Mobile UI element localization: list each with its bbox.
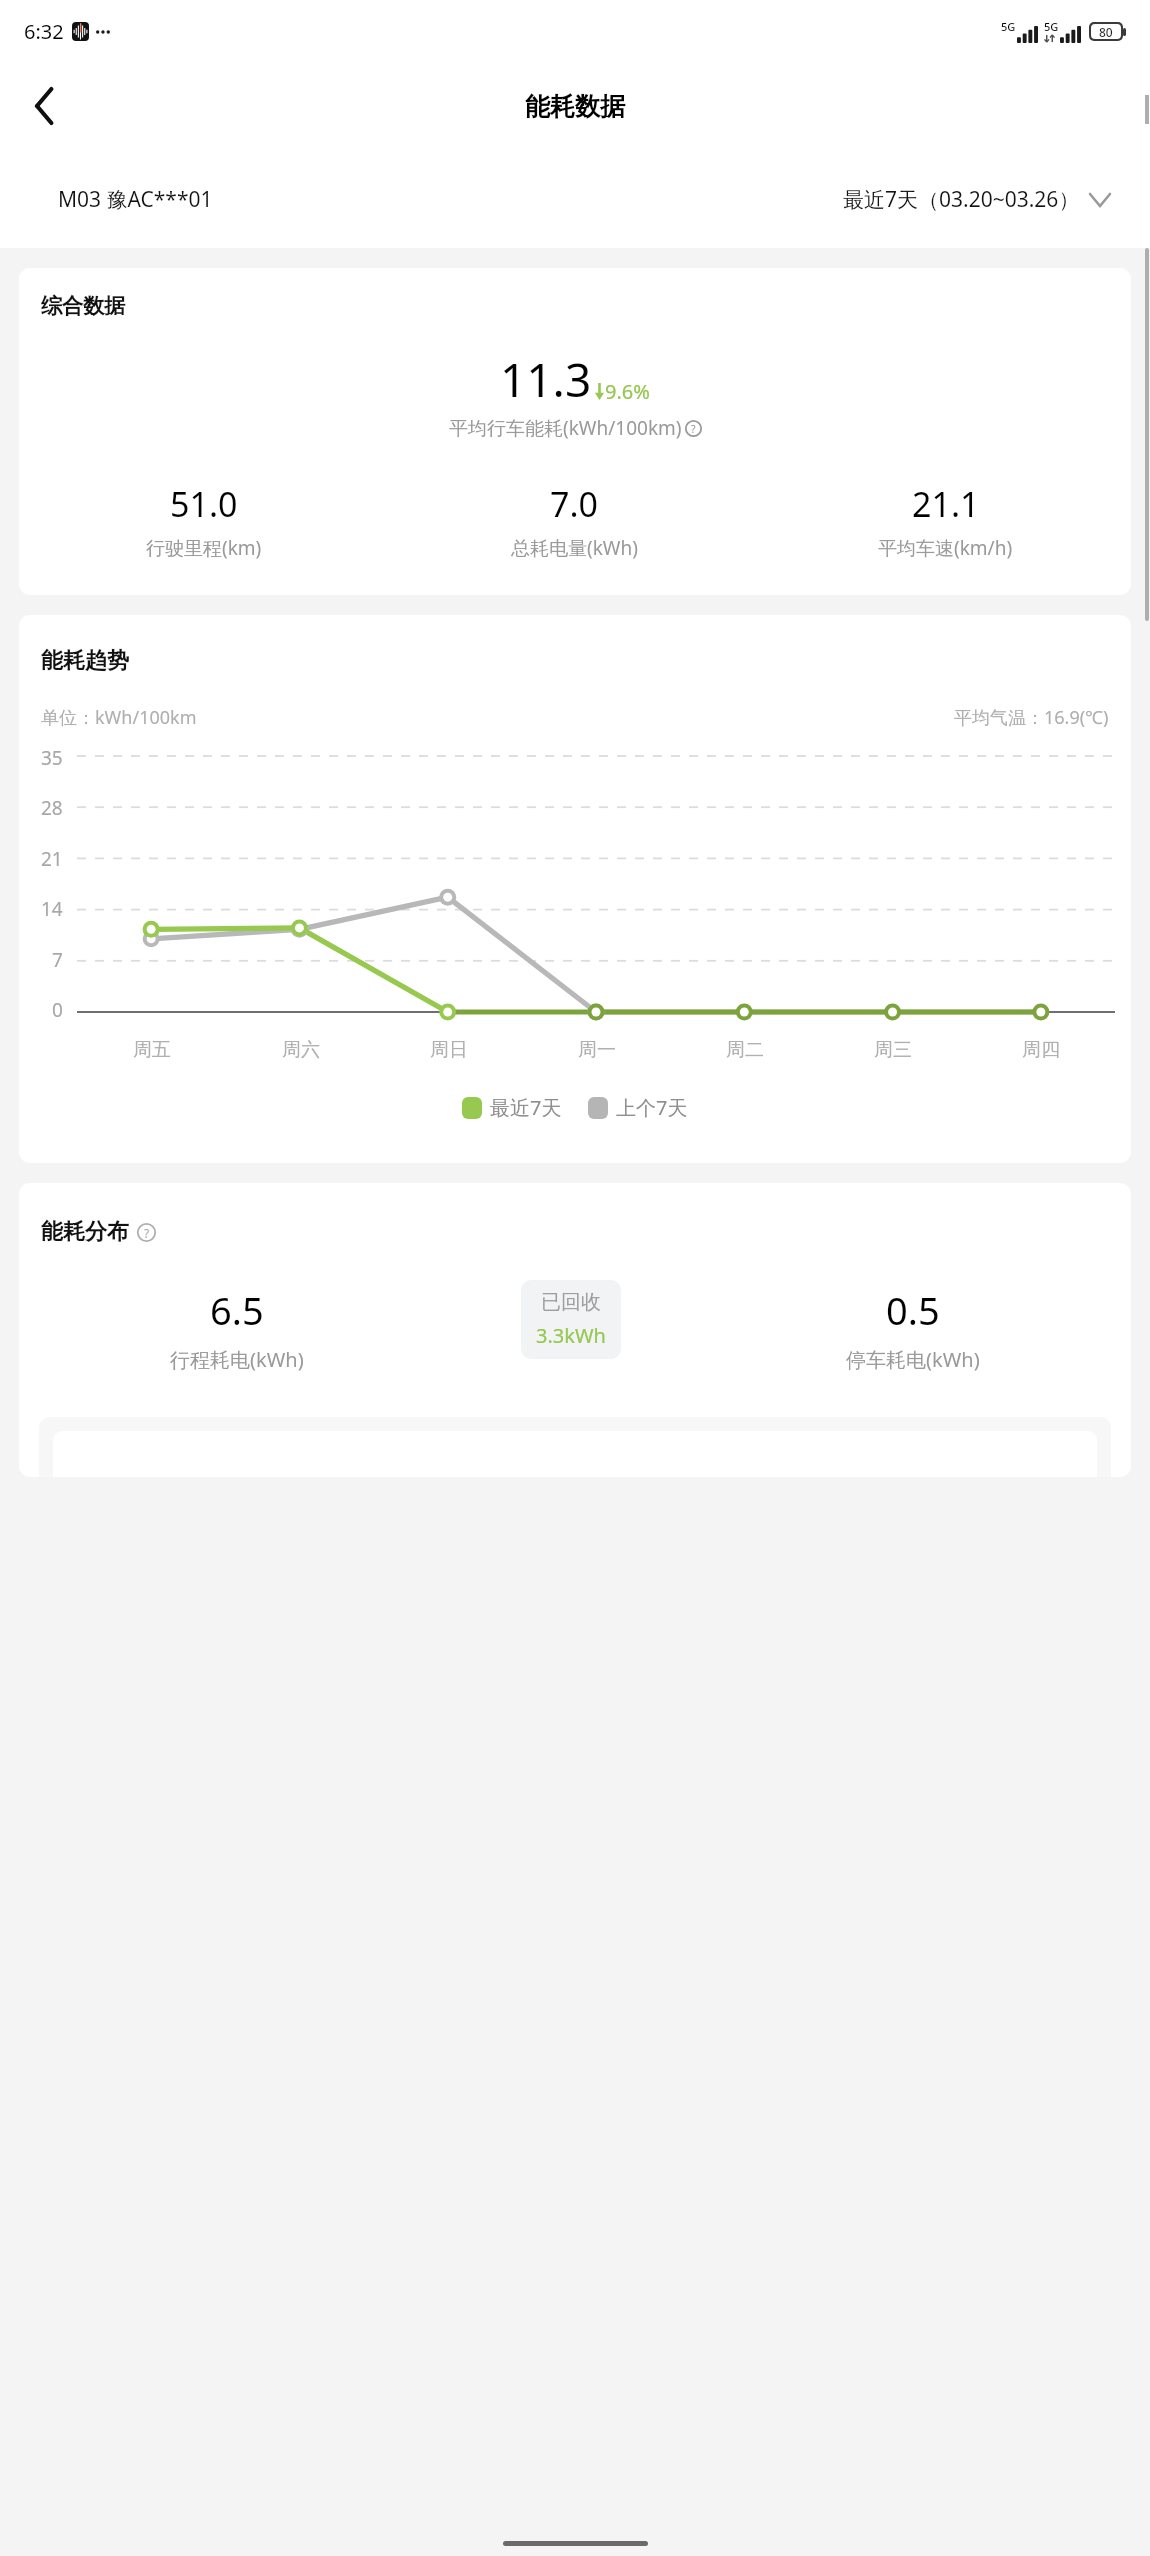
staticText: 9.6% bbox=[605, 378, 650, 405]
staticText: 80 bbox=[1099, 24, 1113, 39]
staticText: 能耗分布 bbox=[41, 1218, 129, 1246]
staticText: 28 bbox=[41, 795, 63, 821]
staticText: M03 豫AC***01 bbox=[58, 185, 213, 214]
staticText: 0 bbox=[52, 997, 63, 1023]
staticText: 行程耗电(kWh) bbox=[170, 1346, 304, 1373]
staticText: 周日 bbox=[430, 1038, 468, 1062]
staticText: 21.1 bbox=[912, 481, 980, 527]
staticText: 平均车速(km/h) bbox=[878, 535, 1013, 561]
staticText: 周六 bbox=[282, 1038, 320, 1062]
staticText: 已回收 bbox=[541, 1290, 601, 1315]
button[interactable]: 最近7天（03.20~03.26） bbox=[843, 185, 1110, 214]
staticText: 35 bbox=[41, 745, 63, 771]
staticText: 5G bbox=[1044, 19, 1059, 34]
staticText: 平均气温：16.9(℃) bbox=[954, 705, 1109, 730]
staticText: 21 bbox=[41, 846, 63, 872]
staticText: 平均行车能耗(kWh/100km) bbox=[449, 415, 682, 441]
staticText: 能耗趋势 bbox=[41, 647, 129, 675]
staticText: ? bbox=[691, 422, 696, 436]
staticText: 6:32 bbox=[24, 18, 64, 45]
staticText: 3.3kWh bbox=[536, 1322, 606, 1349]
staticText: 能耗数据 bbox=[525, 91, 625, 122]
staticText: 51.0 bbox=[170, 481, 238, 527]
staticText: 上个7天 bbox=[616, 1094, 688, 1121]
staticText: 7.0 bbox=[550, 481, 599, 527]
staticText: 周二 bbox=[726, 1038, 764, 1062]
staticText: 周五 bbox=[133, 1038, 171, 1062]
staticText: 5G bbox=[1001, 19, 1016, 34]
staticText: 7 bbox=[52, 947, 63, 973]
staticText: 0.5 bbox=[886, 1284, 940, 1336]
staticText: 周四 bbox=[1022, 1038, 1060, 1062]
staticText: 单位：kWh/100km bbox=[41, 705, 197, 730]
staticText: 停车耗电(kWh) bbox=[846, 1346, 980, 1373]
staticText: 周三 bbox=[874, 1038, 912, 1062]
staticText: 最近7天 bbox=[490, 1094, 562, 1121]
staticText: 最近7天（03.20~03.26） bbox=[843, 185, 1080, 214]
button[interactable]: Back bbox=[14, 75, 76, 137]
staticText: 6.5 bbox=[210, 1284, 264, 1336]
staticText: 总耗电量(kWh) bbox=[511, 535, 638, 561]
staticText: 周一 bbox=[578, 1038, 616, 1062]
staticText: 14 bbox=[41, 896, 63, 922]
staticText: ? bbox=[144, 1225, 150, 1241]
staticText: 综合数据 bbox=[41, 293, 125, 319]
staticText: 行驶里程(km) bbox=[146, 535, 262, 561]
staticText: 11.3 bbox=[500, 348, 592, 411]
